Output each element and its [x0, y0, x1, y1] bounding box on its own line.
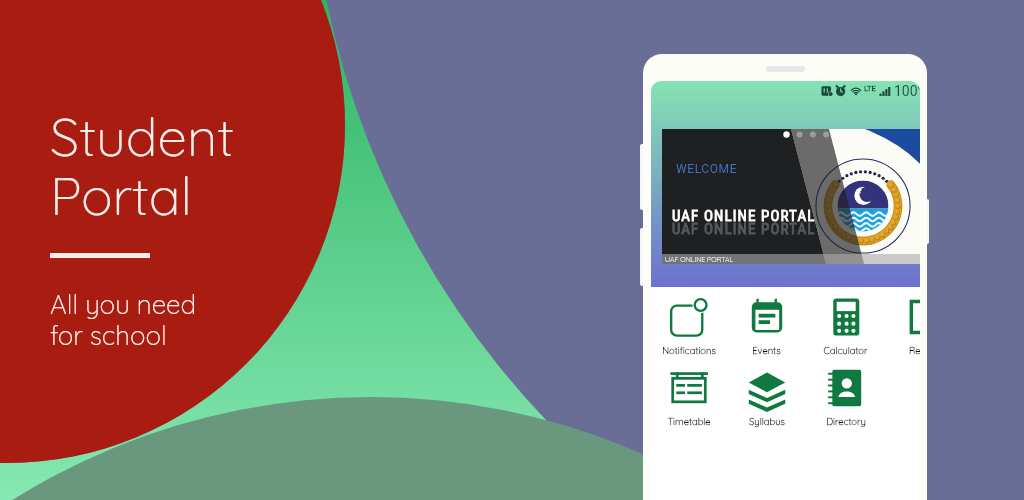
- button[interactable]: Directory: [806, 367, 885, 431]
- button[interactable]: Timetable: [651, 367, 728, 431]
- staticText: Notifications: [662, 344, 716, 356]
- button[interactable]: Syllabus: [727, 367, 806, 431]
- button[interactable]: Notifications: [651, 296, 728, 360]
- button[interactable]: Results: [885, 296, 920, 360]
- staticText: UAF ONLINE PORTAL: [672, 220, 816, 238]
- staticText: WELCOME: [676, 162, 738, 176]
- staticText: UAF ONLINE PORTAL: [665, 255, 734, 264]
- staticText: LTE: [864, 84, 876, 93]
- button[interactable]: Calculator: [806, 296, 885, 360]
- staticText: UAF ONLINE PORTAL: [672, 207, 816, 225]
- button[interactable]: WELCOME: [662, 129, 920, 264]
- button[interactable]: Events: [727, 296, 806, 360]
- staticText: All you need for school: [50, 288, 197, 351]
- staticText: 100%: [894, 83, 920, 99]
- staticText: Timetable: [667, 415, 711, 427]
- staticText: Directory: [826, 415, 866, 427]
- staticText: Calculator: [823, 344, 868, 356]
- staticText: Syllabus: [749, 415, 785, 427]
- staticText: Events: [752, 344, 781, 356]
- staticText: Student Portal: [50, 103, 235, 228]
- staticText: Results: [909, 344, 920, 356]
